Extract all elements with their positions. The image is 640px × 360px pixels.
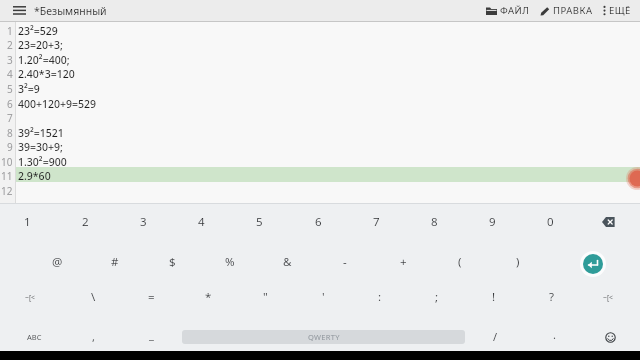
staticText: *Безымянный xyxy=(34,4,107,18)
button[interactable]: = xyxy=(122,279,180,315)
button[interactable]: , xyxy=(64,318,122,354)
staticText: 9 xyxy=(7,140,13,154)
staticText: 3²=9 xyxy=(18,82,40,96)
staticText: 400+120+9=529 xyxy=(18,97,97,111)
button[interactable]: 7 xyxy=(347,204,405,240)
button[interactable]: ' xyxy=(294,279,352,315)
button[interactable]: 9 xyxy=(463,204,521,240)
button[interactable]: ~[< xyxy=(1,279,59,315)
staticText: , xyxy=(92,329,95,344)
button[interactable]: 2 xyxy=(56,204,114,240)
staticText: ! xyxy=(492,289,496,305)
button[interactable]: 3 xyxy=(114,204,172,240)
staticText: + xyxy=(400,254,407,270)
button[interactable] xyxy=(6,0,32,21)
staticText: ~[< xyxy=(25,293,36,302)
button[interactable]: ФАЙЛ xyxy=(486,0,530,21)
button[interactable]: ABC xyxy=(5,319,63,355)
button[interactable]: $ xyxy=(143,244,201,280)
button[interactable]: + xyxy=(374,244,432,280)
button[interactable]: 12 xyxy=(0,183,640,198)
staticText: . xyxy=(553,327,556,342)
button[interactable]: _ xyxy=(122,316,180,352)
staticText: 3 xyxy=(7,53,13,67)
button[interactable]: # xyxy=(86,244,144,280)
button[interactable]: ( xyxy=(431,244,489,280)
staticText: 23²=529 xyxy=(18,24,58,38)
button[interactable]: QWERTY xyxy=(182,330,465,344)
button[interactable]: 8 xyxy=(0,125,640,140)
button[interactable]: % xyxy=(201,244,259,280)
staticText: ABC xyxy=(27,332,42,342)
staticText: 4 xyxy=(198,214,205,230)
button[interactable]: 8 xyxy=(405,204,463,240)
staticText: 11 xyxy=(1,169,13,183)
button[interactable]: / xyxy=(466,318,524,354)
staticText: ПРАВКА xyxy=(553,4,593,17)
staticText: ) xyxy=(516,254,520,270)
staticText: 2.40*3=120 xyxy=(18,67,75,81)
staticText: @ xyxy=(52,254,63,270)
button[interactable] xyxy=(588,204,630,240)
staticText: ЕЩЁ xyxy=(609,4,631,17)
staticText: 2 xyxy=(7,38,13,52)
staticText: 0 xyxy=(547,214,554,230)
button[interactable]: @ xyxy=(28,244,86,280)
button[interactable]: 2 xyxy=(0,37,640,52)
button[interactable]: 11 xyxy=(0,168,640,183)
staticText: : xyxy=(378,289,382,305)
button[interactable]: 1 xyxy=(0,23,640,38)
staticText: 1.20²=400; xyxy=(18,53,70,67)
button[interactable]: : xyxy=(351,279,409,315)
button[interactable]: \ xyxy=(64,279,122,315)
staticText: \ xyxy=(91,289,96,305)
button[interactable] xyxy=(592,319,628,355)
button[interactable]: ) xyxy=(489,244,547,280)
button[interactable]: ПРАВКА xyxy=(540,0,593,21)
button[interactable]: ; xyxy=(408,279,466,315)
button[interactable]: * xyxy=(179,279,237,315)
staticText: 39²=1521 xyxy=(18,126,64,140)
button[interactable]: 9 xyxy=(0,139,640,154)
staticText: 5 xyxy=(256,214,263,230)
button[interactable] xyxy=(575,246,611,282)
button[interactable]: . xyxy=(525,316,583,352)
button[interactable]: 10 xyxy=(0,154,640,169)
staticText: 1 xyxy=(7,24,13,38)
staticText: = xyxy=(148,289,155,305)
staticText: 9 xyxy=(489,214,496,230)
button[interactable]: 1 xyxy=(0,204,56,240)
button[interactable]: 7 xyxy=(0,110,640,125)
staticText: 10 xyxy=(1,155,13,169)
staticText: 1 xyxy=(24,214,31,230)
staticText: / xyxy=(493,329,498,344)
button[interactable]: ? xyxy=(522,279,580,315)
button[interactable]: 6 xyxy=(289,204,347,240)
button[interactable]: ~[< xyxy=(579,279,637,315)
staticText: ; xyxy=(435,289,439,305)
staticText: 5 xyxy=(7,82,13,96)
staticText: QWERTY xyxy=(308,332,340,342)
button[interactable]: & xyxy=(258,244,316,280)
staticText: ' xyxy=(322,289,325,305)
staticText: 23=20+3; xyxy=(18,38,63,52)
button[interactable]: 5 xyxy=(230,204,288,240)
button[interactable]: ! xyxy=(465,279,523,315)
button[interactable]: 4 xyxy=(0,66,640,81)
staticText: 2 xyxy=(82,214,89,230)
staticText: ? xyxy=(549,289,554,305)
staticText: * xyxy=(205,289,212,305)
button[interactable]: 0 xyxy=(521,204,579,240)
button[interactable]: " xyxy=(236,279,294,315)
button[interactable]: - xyxy=(316,244,374,280)
button[interactable]: 6 xyxy=(0,96,640,111)
button[interactable]: 4 xyxy=(172,204,230,240)
staticText: % xyxy=(225,254,235,270)
button[interactable]: 3 xyxy=(0,52,640,67)
staticText: 39=30+9; xyxy=(18,140,63,154)
button[interactable]: ЕЩЁ xyxy=(603,0,631,21)
staticText: ( xyxy=(458,254,462,270)
staticText: # xyxy=(111,254,119,270)
staticText: " xyxy=(263,289,268,305)
button[interactable]: 5 xyxy=(0,81,640,96)
